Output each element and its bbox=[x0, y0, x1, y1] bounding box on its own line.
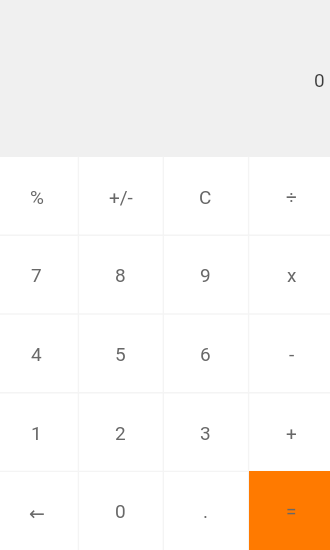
staticText: % bbox=[30, 186, 44, 208]
staticText: 5 bbox=[115, 343, 126, 365]
staticText: 7 bbox=[31, 264, 42, 286]
button[interactable]: = bbox=[249, 471, 330, 550]
staticText: 3 bbox=[200, 422, 211, 444]
button[interactable]: 7 bbox=[0, 235, 79, 314]
button[interactable]: 8 bbox=[78, 235, 163, 314]
button[interactable]: 0 bbox=[78, 471, 163, 550]
staticText: ÷ bbox=[286, 186, 297, 208]
staticText: C bbox=[199, 186, 212, 208]
button[interactable]: 5 bbox=[78, 314, 163, 393]
button[interactable]: 9 bbox=[163, 235, 248, 314]
button[interactable]: 3 bbox=[163, 393, 248, 472]
button[interactable]: 1 bbox=[0, 393, 79, 472]
button[interactable]: 4 bbox=[0, 314, 79, 393]
button[interactable]: - bbox=[249, 314, 330, 393]
button[interactable]: + bbox=[249, 393, 330, 472]
staticText: 8 bbox=[115, 264, 126, 286]
staticText: = bbox=[286, 500, 297, 522]
staticText: 0 bbox=[115, 500, 126, 522]
staticText: + bbox=[286, 422, 297, 444]
button[interactable]: x bbox=[249, 235, 330, 314]
staticText: x bbox=[287, 264, 297, 286]
button[interactable]: . bbox=[163, 471, 248, 550]
staticText: 0 bbox=[314, 69, 325, 91]
staticText: 6 bbox=[200, 343, 211, 365]
staticText: . bbox=[203, 500, 209, 522]
staticText: - bbox=[289, 343, 295, 365]
button[interactable]: 2 bbox=[78, 393, 163, 472]
staticText: 2 bbox=[115, 422, 126, 444]
staticText: 9 bbox=[200, 264, 211, 286]
button[interactable]: % bbox=[0, 157, 79, 236]
button[interactable]: C bbox=[163, 157, 248, 236]
button[interactable]: 0 bbox=[0, 0, 330, 157]
staticText: +/- bbox=[109, 186, 133, 208]
button[interactable]: +/- bbox=[78, 157, 163, 236]
staticText: 1 bbox=[31, 422, 42, 444]
staticText: 4 bbox=[31, 343, 42, 365]
staticText: ← bbox=[29, 502, 45, 524]
button[interactable]: Backspace bbox=[0, 471, 79, 550]
button[interactable]: 6 bbox=[163, 314, 248, 393]
button[interactable]: ÷ bbox=[249, 157, 330, 236]
